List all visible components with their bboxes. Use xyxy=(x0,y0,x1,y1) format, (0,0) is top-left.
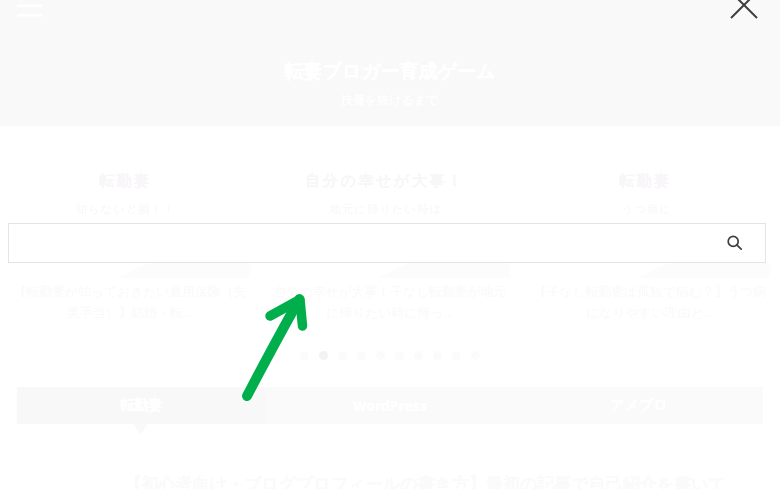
staticText: 自分の幸せが大事！ xyxy=(305,172,465,191)
button[interactable]: Close xyxy=(719,0,769,34)
staticText: 自分の幸せが大事！子なし転勤妻が地元に帰りたい時に帰っ... xyxy=(268,284,512,320)
button[interactable]: 転勤妻 xyxy=(520,134,780,320)
staticText: 転勤妻 xyxy=(619,172,672,191)
button[interactable]: Search xyxy=(725,231,749,255)
button[interactable] xyxy=(319,351,328,360)
button[interactable]: 転勤妻 xyxy=(0,134,260,320)
button[interactable]: 転勤妻 xyxy=(17,387,265,424)
button[interactable]: 自分の幸せが大事！ xyxy=(260,134,520,320)
staticText: 転勤妻 xyxy=(99,172,152,191)
